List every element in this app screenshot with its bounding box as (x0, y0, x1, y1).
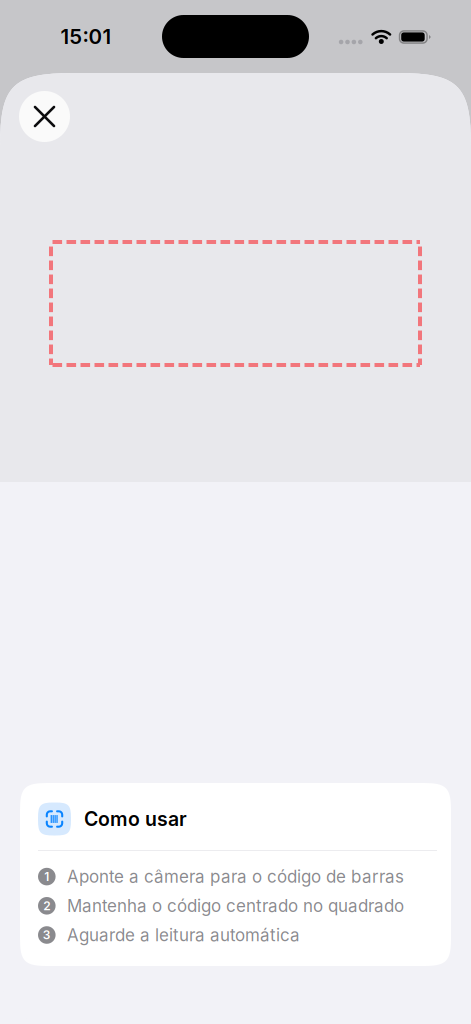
staticText: Aponte a câmera para o código de barras (67, 866, 404, 887)
staticText: 1 (44, 869, 49, 884)
staticText: 3 (43, 928, 51, 942)
staticText: Como usar (84, 807, 187, 831)
staticText: Aguarde a leitura automática (67, 925, 300, 945)
button[interactable]: Close (19, 91, 70, 142)
staticText: 15:01 (60, 24, 111, 49)
staticText: Mantenha o código centrado no quadrado (67, 896, 404, 916)
staticText: 2 (43, 898, 50, 913)
